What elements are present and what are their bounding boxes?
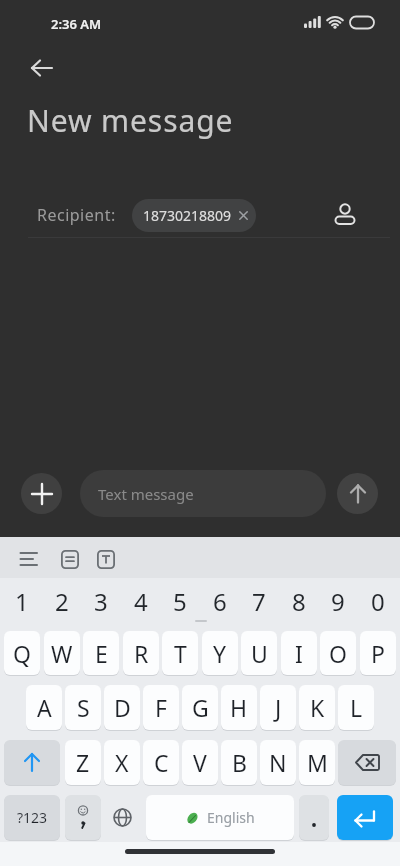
- button[interactable]: W: [44, 631, 80, 675]
- staticText: Recipient:: [37, 204, 116, 226]
- button[interactable]: Text message: [80, 470, 326, 517]
- staticText: E: [95, 638, 108, 669]
- button[interactable]: 18730218809: [132, 199, 256, 232]
- button[interactable]: ?123: [4, 795, 60, 840]
- button[interactable]: [337, 795, 393, 840]
- button[interactable]: P: [360, 631, 396, 675]
- button[interactable]: [55, 544, 85, 574]
- button[interactable]: 7: [241, 585, 277, 615]
- button[interactable]: O: [320, 631, 356, 675]
- staticText: D: [114, 692, 131, 723]
- staticText: New message: [27, 100, 234, 141]
- staticText: I: [295, 638, 303, 669]
- button[interactable]: 0: [360, 585, 396, 615]
- staticText: 3: [94, 585, 108, 615]
- button[interactable]: G: [182, 685, 218, 730]
- button[interactable]: 6: [202, 585, 238, 615]
- button[interactable]: C: [143, 740, 179, 785]
- button[interactable]: Q: [4, 631, 40, 675]
- staticText: Q: [13, 638, 31, 669]
- button[interactable]: [91, 544, 121, 574]
- staticText: English: [207, 808, 255, 827]
- button[interactable]: [24, 50, 60, 86]
- button[interactable]: A: [26, 685, 62, 730]
- staticText: K: [310, 692, 325, 723]
- staticText: 0: [371, 585, 385, 615]
- button[interactable]: K: [299, 685, 335, 730]
- staticText: 7: [252, 585, 266, 615]
- staticText: Text message: [98, 484, 194, 504]
- staticText: M: [307, 747, 328, 778]
- button[interactable]: B: [221, 740, 257, 785]
- button[interactable]: [4, 740, 60, 785]
- staticText: Z: [76, 747, 90, 778]
- button[interactable]: H: [221, 685, 257, 730]
- button[interactable]: [327, 195, 363, 231]
- staticText: C: [154, 747, 169, 778]
- button[interactable]: F: [143, 685, 179, 730]
- button[interactable]: 2: [44, 585, 80, 615]
- button[interactable]: Y: [202, 631, 238, 675]
- button[interactable]: [337, 473, 378, 514]
- button[interactable]: [338, 740, 396, 785]
- staticText: 9: [331, 585, 345, 615]
- staticText: 1: [15, 585, 29, 615]
- staticText: ?123: [17, 808, 48, 827]
- staticText: S: [77, 692, 90, 723]
- staticText: V: [193, 747, 207, 778]
- staticText: 2: [55, 585, 69, 615]
- staticText: O: [329, 638, 347, 669]
- staticText: 8: [292, 585, 306, 615]
- button[interactable]: M: [299, 740, 335, 785]
- staticText: 6: [213, 585, 227, 615]
- button[interactable]: I: [281, 631, 317, 675]
- staticText: N: [269, 747, 287, 778]
- staticText: X: [115, 747, 129, 778]
- button[interactable]: L: [338, 685, 374, 730]
- staticText: T: [174, 638, 187, 669]
- button[interactable]: 3: [83, 585, 119, 615]
- staticText: B: [232, 747, 247, 778]
- button[interactable]: 1: [4, 585, 40, 615]
- button[interactable]: [21, 473, 62, 514]
- button[interactable]: [104, 795, 140, 840]
- button[interactable]: D: [104, 685, 140, 730]
- staticText: G: [192, 692, 209, 723]
- button[interactable]: J: [260, 685, 296, 730]
- staticText: L: [350, 692, 363, 723]
- button[interactable]: 8: [281, 585, 317, 615]
- staticText: R: [134, 638, 149, 669]
- staticText: F: [155, 692, 167, 723]
- staticText: 18730218809: [143, 206, 232, 225]
- button[interactable]: Z: [65, 740, 101, 785]
- button[interactable]: [299, 795, 329, 840]
- staticText: 4: [134, 585, 148, 615]
- staticText: Y: [213, 638, 227, 669]
- button[interactable]: S: [65, 685, 101, 730]
- button[interactable]: E: [83, 631, 119, 675]
- staticText: 2:36 AM: [51, 15, 102, 33]
- button[interactable]: [14, 544, 44, 574]
- button[interactable]: U: [241, 631, 277, 675]
- staticText: H: [230, 692, 248, 723]
- button[interactable]: 9: [320, 585, 356, 615]
- staticText: U: [251, 638, 268, 669]
- button[interactable]: X: [104, 740, 140, 785]
- staticText: W: [51, 638, 73, 669]
- button[interactable]: 4: [123, 585, 159, 615]
- staticText: A: [37, 692, 52, 723]
- button[interactable]: R: [123, 631, 159, 675]
- button[interactable]: [65, 795, 101, 840]
- button[interactable]: T: [162, 631, 198, 675]
- button[interactable]: 5: [162, 585, 198, 615]
- staticText: J: [275, 692, 282, 723]
- button[interactable]: English: [146, 795, 294, 840]
- button[interactable]: V: [182, 740, 218, 785]
- staticText: P: [371, 638, 385, 669]
- staticText: 5: [173, 585, 187, 615]
- button[interactable]: N: [260, 740, 296, 785]
